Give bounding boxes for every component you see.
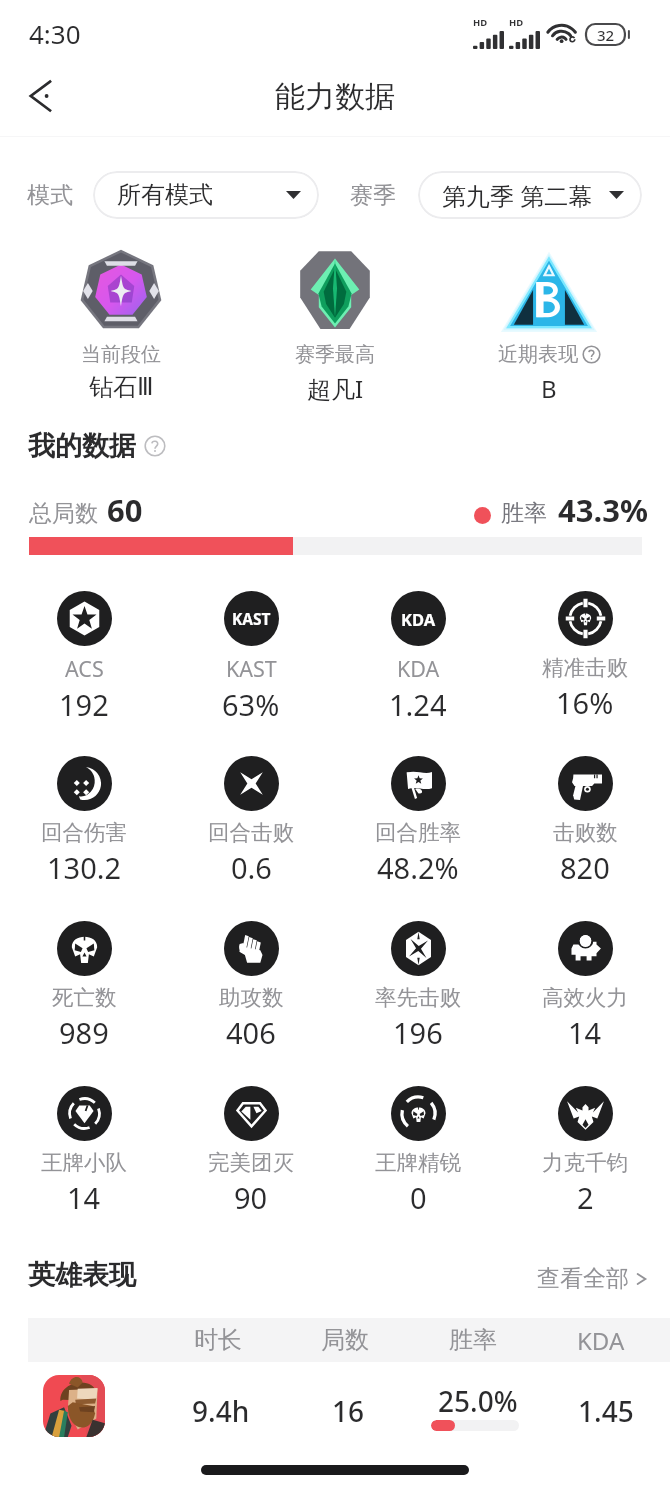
staticText: 14 [67, 1178, 101, 1217]
staticText: 回合伤害 [41, 819, 127, 846]
staticText: 63% [222, 685, 280, 724]
button[interactable]: 击败数 [502, 756, 668, 896]
button[interactable]: 力克千钧 [502, 1086, 668, 1226]
button[interactable]: KAST [168, 591, 334, 731]
staticText: 力克千钧 [542, 1149, 628, 1176]
staticText: ACS [65, 654, 104, 683]
staticText: 赛季 [350, 181, 396, 210]
staticText: 25.0% [438, 1382, 518, 1420]
staticText: 钻石Ⅲ [89, 372, 154, 402]
staticText: 4:30 [29, 16, 81, 51]
staticText: 192 [59, 685, 109, 724]
button[interactable]: 死亡数 [1, 921, 167, 1061]
staticText: 406 [226, 1013, 276, 1052]
staticText: KAST [232, 608, 271, 629]
staticText: 我的数据 [28, 429, 136, 463]
staticText: B [541, 372, 557, 405]
staticText: 989 [59, 1013, 109, 1052]
staticText: 高效火力 [542, 984, 628, 1011]
button[interactable]: 回合击败 [168, 756, 334, 896]
button[interactable]: ACS [1, 591, 167, 731]
button[interactable]: 第九季 第二幕 [418, 171, 642, 219]
staticText: 1.45 [578, 1392, 634, 1430]
button[interactable]: 高效火力 [502, 921, 668, 1061]
staticText: 130.2 [47, 848, 122, 887]
staticText: 时长 [194, 1325, 242, 1355]
staticText: 所有模式 [117, 180, 213, 210]
staticText: 48.2% [377, 848, 459, 887]
staticText: 9.4h [192, 1392, 250, 1430]
staticText: 16% [556, 683, 614, 722]
staticText: 当前段位 [81, 342, 161, 367]
staticText: 总局数 [29, 499, 98, 528]
staticText: 16 [332, 1392, 365, 1430]
staticText: 0.6 [231, 848, 272, 887]
button[interactable]: 回合伤害 [1, 756, 167, 896]
staticText: 英雄表现 [28, 1258, 136, 1292]
staticText: 回合击败 [208, 819, 294, 846]
staticText: 能力数据 [275, 78, 395, 116]
staticText: 近期表现 [498, 342, 578, 367]
staticText: 王牌小队 [41, 1149, 127, 1176]
staticText: 43.3% [558, 489, 648, 531]
staticText: 60 [107, 489, 143, 531]
staticText: 模式 [27, 181, 73, 210]
staticText: HD [473, 16, 488, 29]
staticText: 死亡数 [52, 984, 117, 1011]
staticText: KDA [401, 608, 436, 630]
staticText: KAST [226, 654, 277, 683]
staticText: 回合胜率 [375, 819, 461, 846]
staticText: 超凡I [307, 372, 364, 405]
staticText: 局数 [321, 1325, 369, 1355]
staticText: KDA [397, 654, 440, 683]
button[interactable]: KDA [335, 591, 501, 731]
staticText: 击败数 [553, 819, 618, 846]
button[interactable]: 回合胜率 [335, 756, 501, 896]
button[interactable]: Back [11, 65, 73, 127]
staticText: 14 [568, 1013, 602, 1052]
staticText: 196 [393, 1013, 443, 1052]
staticText: 率先击败 [375, 984, 461, 1011]
button[interactable]: 王牌小队 [1, 1086, 167, 1226]
button[interactable]: 助攻数 [168, 921, 334, 1061]
staticText: 胜率 [501, 499, 547, 528]
button[interactable]: 查看全部 [537, 1264, 647, 1293]
staticText: 查看全部 [537, 1264, 629, 1293]
staticText: KDA [577, 1324, 625, 1357]
staticText: 2 [577, 1178, 594, 1217]
staticText: 完美团灭 [208, 1149, 294, 1176]
staticText: 胜率 [449, 1325, 497, 1355]
staticText: 0 [410, 1178, 427, 1217]
staticText: 第九季 第二幕 [442, 179, 593, 212]
staticText: 赛季最高 [295, 342, 375, 367]
button[interactable]: 率先击败 [335, 921, 501, 1061]
button[interactable]: 完美团灭 [168, 1086, 334, 1226]
button[interactable]: 精准击败 [502, 591, 668, 731]
staticText: 王牌精锐 [375, 1149, 461, 1176]
staticText: 精准击败 [542, 654, 628, 681]
staticText: 助攻数 [219, 984, 284, 1011]
button[interactable]: 9.4h [0, 1366, 670, 1451]
staticText: 32 [597, 25, 615, 45]
button[interactable]: 王牌精锐 [335, 1086, 501, 1226]
staticText: 820 [560, 848, 610, 887]
button[interactable]: 所有模式 [93, 171, 319, 219]
staticText: 1.24 [389, 685, 447, 724]
staticText: HD [509, 16, 524, 29]
staticText: 90 [234, 1178, 268, 1217]
